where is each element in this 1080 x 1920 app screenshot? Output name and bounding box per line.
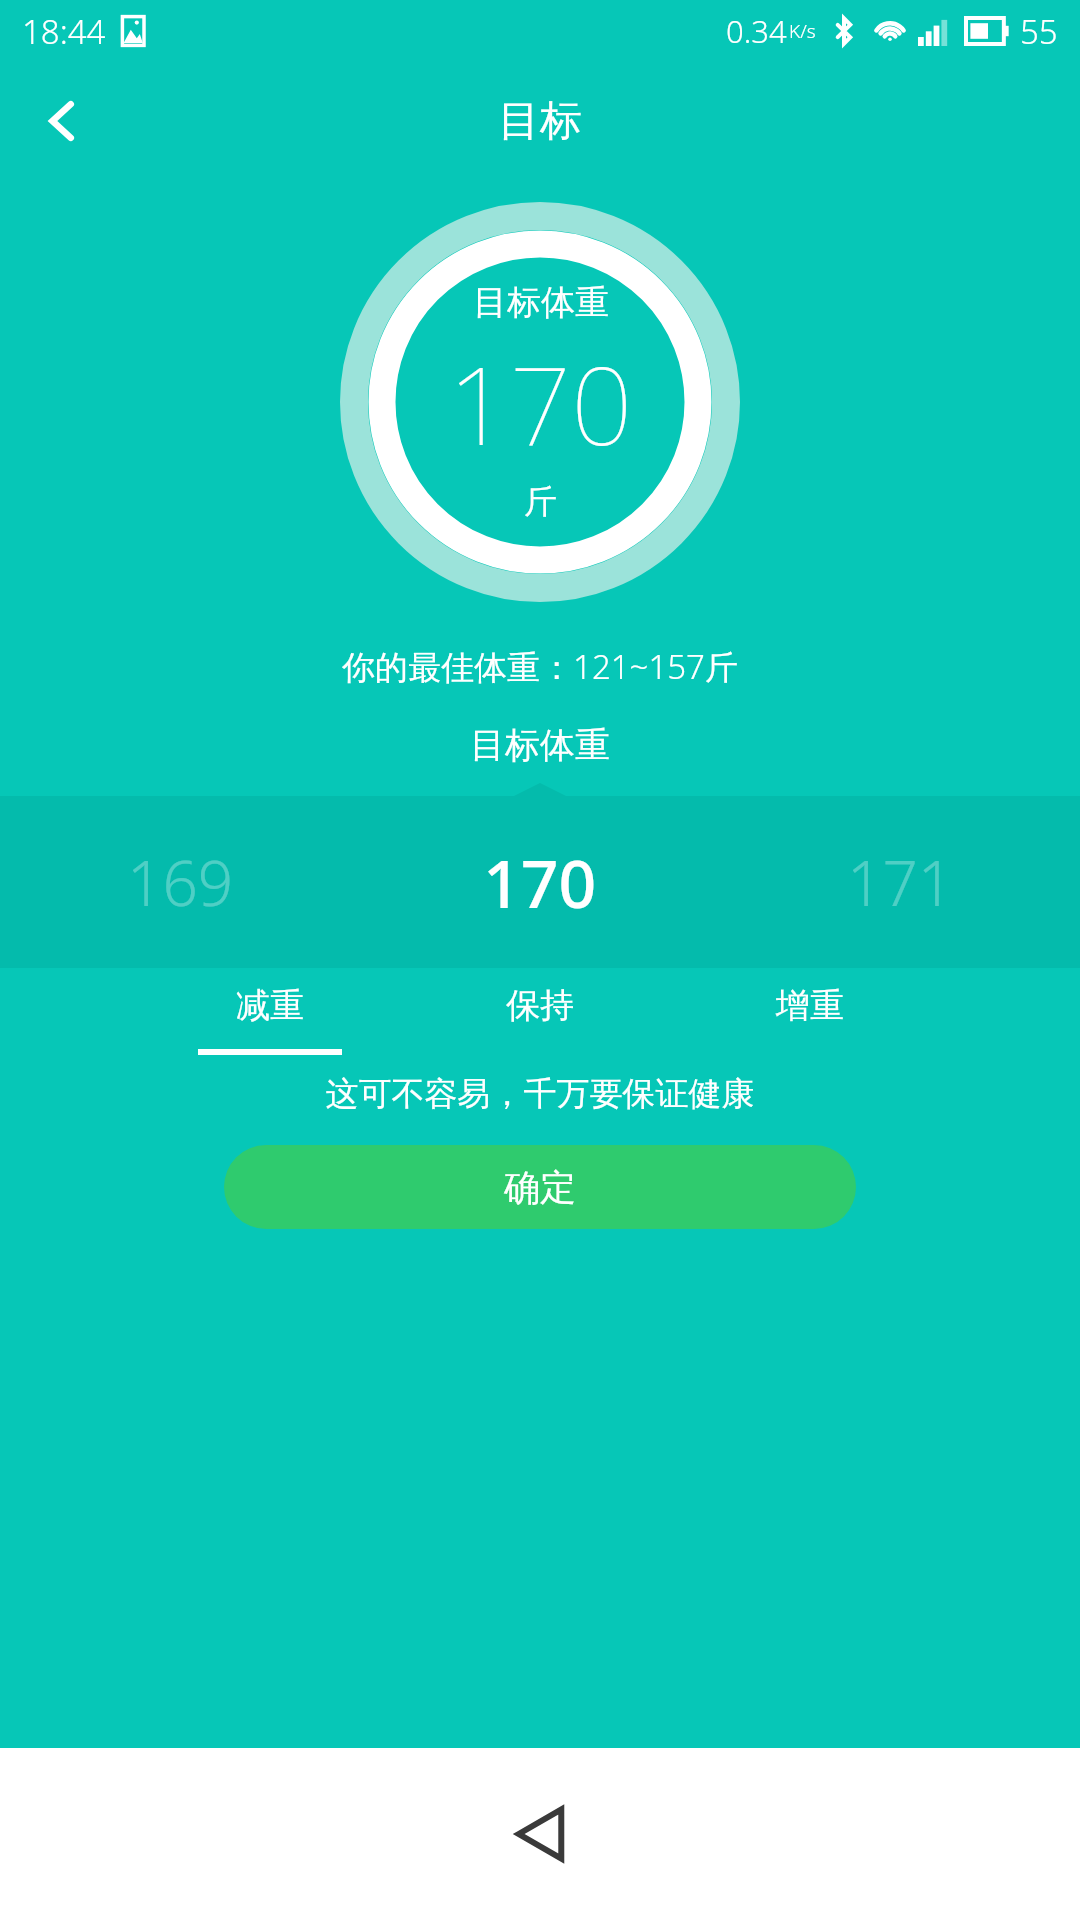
staticText: 170 bbox=[448, 330, 633, 477]
button[interactable]: 增重 bbox=[730, 984, 890, 1055]
button[interactable]: 确定 bbox=[224, 1145, 856, 1229]
staticText: 55 bbox=[1020, 9, 1058, 54]
staticText: 169 bbox=[127, 840, 234, 924]
button[interactable]: 171 bbox=[720, 840, 1080, 924]
staticText: 目标体重 bbox=[473, 281, 609, 324]
staticText: 0.34 bbox=[726, 10, 787, 52]
staticText: 这可不容易，千万要保证健康 bbox=[0, 1073, 1080, 1115]
staticText: 减重 bbox=[236, 984, 304, 1027]
staticText: 171 bbox=[847, 840, 954, 924]
button[interactable]: 保持 bbox=[460, 984, 620, 1055]
staticText: 目标 bbox=[498, 95, 582, 148]
button[interactable]: 169 bbox=[0, 840, 360, 924]
staticText: 保持 bbox=[506, 984, 574, 1027]
staticText: 斤 bbox=[524, 481, 557, 523]
button[interactable]: 170 bbox=[360, 837, 720, 927]
staticText: 确定 bbox=[504, 1165, 576, 1210]
staticText: 你的最佳体重：121~157斤 bbox=[0, 644, 1080, 689]
staticText: 增重 bbox=[776, 984, 844, 1027]
button[interactable]: Back bbox=[14, 73, 110, 169]
staticText: K/s bbox=[789, 18, 816, 44]
staticText: 170 bbox=[483, 837, 597, 927]
staticText: 18:44 bbox=[22, 9, 106, 54]
button[interactable]: Back bbox=[480, 1774, 600, 1894]
button[interactable]: 减重 bbox=[190, 984, 350, 1055]
staticText: 目标体重 bbox=[0, 723, 1080, 767]
